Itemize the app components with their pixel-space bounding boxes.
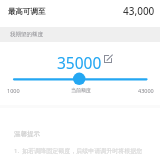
staticText: 当前额度 — [71, 87, 91, 93]
button[interactable]: Edit amount — [104, 55, 113, 64]
staticText: 1000 — [7, 87, 20, 94]
staticText: 1. 如若调降固定额度，后续申请调升时将根据您 — [14, 147, 143, 155]
staticText: 温馨提示 — [14, 130, 40, 138]
staticText: 最高可调至 — [8, 7, 46, 16]
staticText: 43,000 — [123, 4, 155, 18]
staticText: 我期望的额度 — [10, 31, 43, 38]
staticText: 35000 — [57, 52, 102, 73]
staticText: 43000 — [138, 87, 154, 94]
